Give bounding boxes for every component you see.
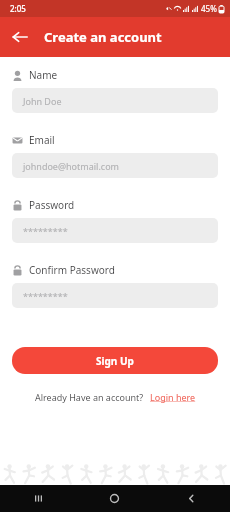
button[interactable]: Back [0, 17, 40, 57]
button[interactable]: Login here [150, 391, 196, 403]
button[interactable]: Sign Up [12, 347, 218, 374]
button[interactable]: John Doe [12, 88, 218, 113]
button[interactable]: ********* [12, 283, 218, 308]
staticText: Sign Up [96, 354, 134, 368]
staticText: ********* [23, 290, 68, 302]
staticText: 2:05 [10, 3, 26, 14]
staticText: Confirm Password [29, 263, 115, 277]
staticText: 45% [201, 3, 217, 14]
staticText: johndoe@hotmail.com [23, 160, 119, 172]
staticText: Email [29, 133, 55, 147]
button[interactable]: Home [76, 485, 153, 512]
staticText: Login here [150, 391, 196, 403]
staticText: John Doe [23, 95, 62, 107]
staticText: ********* [23, 225, 68, 237]
staticText: Password [29, 198, 75, 212]
button[interactable]: Recent apps [0, 485, 76, 512]
button[interactable]: ********* [12, 218, 218, 243]
button[interactable]: Back [153, 485, 230, 512]
staticText: Create an account [44, 28, 162, 46]
staticText: Name [29, 68, 58, 82]
button[interactable]: johndoe@hotmail.com [12, 153, 218, 178]
staticText: Already Have an account? [35, 391, 144, 403]
